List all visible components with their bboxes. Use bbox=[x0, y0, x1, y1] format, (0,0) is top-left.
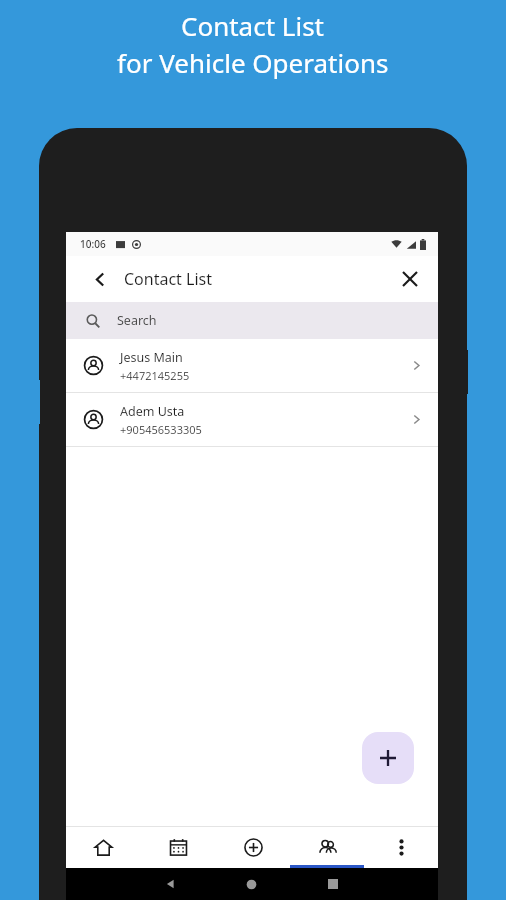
button[interactable]: Close bbox=[396, 265, 424, 293]
button[interactable]: More options bbox=[364, 826, 438, 868]
button[interactable]: Home bbox=[66, 826, 141, 868]
button[interactable]: Add contact bbox=[362, 732, 414, 784]
staticText: +4472145255 bbox=[120, 368, 190, 383]
button[interactable]: Calendar bbox=[141, 826, 216, 868]
staticText: Contact List bbox=[124, 268, 213, 290]
staticText: Adem Usta bbox=[120, 403, 185, 420]
staticText: Jesus Main bbox=[120, 349, 183, 366]
button[interactable]: Search bbox=[66, 302, 438, 339]
button[interactable]: Contacts bbox=[290, 826, 364, 868]
button[interactable]: Adem Usta bbox=[66, 393, 438, 446]
button[interactable]: Back bbox=[86, 265, 114, 293]
staticText: +905456533305 bbox=[120, 422, 202, 437]
button[interactable]: Jesus Main bbox=[66, 339, 438, 392]
staticText: Contact List bbox=[181, 8, 325, 43]
staticText: Search bbox=[117, 312, 157, 329]
button[interactable]: Add bbox=[216, 826, 290, 868]
staticText: 10:06 bbox=[80, 237, 106, 251]
staticText: for Vehicle Operations bbox=[117, 45, 389, 80]
